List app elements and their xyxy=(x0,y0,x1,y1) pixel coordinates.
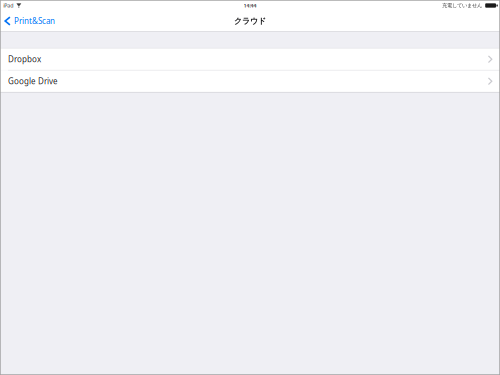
staticText: Print&Scan xyxy=(14,16,55,26)
staticText: Dropbox xyxy=(8,54,41,64)
button[interactable]: Dropbox xyxy=(0,48,500,70)
staticText: iPad xyxy=(3,2,13,9)
staticText: 充電していません xyxy=(442,2,482,9)
staticText: 14:44 xyxy=(243,2,256,9)
staticText: クラウド xyxy=(234,16,266,26)
button[interactable]: Google Drive xyxy=(0,70,500,92)
button[interactable]: Print&Scan xyxy=(0,11,60,31)
staticText: Google Drive xyxy=(8,76,58,86)
